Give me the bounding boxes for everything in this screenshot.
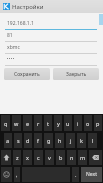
- staticText: z: [16, 154, 19, 161]
- staticText: h: [58, 137, 62, 144]
- button[interactable]: 192.168.1.1: [0, 18, 103, 30]
- staticText: Закрыть: [66, 71, 87, 78]
- button[interactable]: i: [74, 115, 82, 131]
- button[interactable]: g: [44, 133, 53, 148]
- staticText: 81: [7, 32, 13, 39]
- staticText: m: [80, 154, 86, 161]
- staticText: x: [26, 154, 29, 161]
- button[interactable]: o: [84, 115, 92, 131]
- button[interactable]: xbmc: [0, 42, 103, 54]
- button[interactable]: Закрыть: [53, 68, 99, 80]
- button[interactable]: u: [64, 115, 72, 131]
- staticText: s: [17, 137, 20, 144]
- button[interactable]: k: [77, 133, 86, 148]
- staticText: q: [4, 120, 8, 127]
- button[interactable]: r: [34, 115, 42, 131]
- button[interactable]: y: [54, 115, 62, 131]
- button[interactable]: f: [34, 133, 42, 148]
- button[interactable]: Next: [81, 167, 102, 182]
- staticText: .: [75, 171, 77, 178]
- button[interactable]: v: [45, 150, 54, 165]
- button[interactable]: d: [24, 133, 32, 148]
- button[interactable]: j: [66, 133, 75, 148]
- staticText: Next: [86, 171, 97, 178]
- staticText: f: [37, 137, 39, 144]
- button[interactable]: Shift: [1, 150, 11, 165]
- staticText: c: [37, 154, 40, 161]
- staticText: j: [70, 137, 72, 144]
- button[interactable]: b: [56, 150, 65, 165]
- button[interactable]: Сохранить: [4, 68, 50, 80]
- staticText: v: [48, 154, 51, 161]
- button[interactable]: s: [14, 133, 22, 148]
- staticText: i: [77, 120, 79, 127]
- button[interactable]: x: [23, 150, 32, 165]
- button[interactable]: z: [13, 150, 21, 165]
- staticText: e: [26, 120, 30, 127]
- staticText: l: [92, 137, 94, 144]
- button[interactable]: w: [12, 115, 21, 131]
- button[interactable]: .: [72, 167, 79, 182]
- button[interactable]: l: [88, 133, 97, 148]
- button[interactable]: e: [23, 115, 32, 131]
- button[interactable]: q: [1, 115, 10, 131]
- staticText: w: [14, 120, 19, 127]
- staticText: r: [37, 120, 40, 127]
- staticText: a: [6, 137, 10, 144]
- button[interactable]: a: [4, 133, 12, 148]
- staticText: Сохранить: [14, 71, 40, 78]
- button[interactable]: ,: [14, 167, 20, 182]
- button[interactable]: Emoji: [1, 167, 12, 182]
- button[interactable]: n: [67, 150, 76, 165]
- staticText: o: [86, 120, 90, 127]
- staticText: b: [59, 154, 63, 161]
- staticText: p: [96, 120, 100, 127]
- staticText: y: [57, 120, 60, 127]
- staticText: g: [47, 137, 51, 144]
- staticText: xbmc: [7, 44, 20, 51]
- staticText: d: [26, 137, 30, 144]
- button[interactable]: [0, 54, 103, 66]
- button[interactable]: 81: [0, 30, 103, 42]
- staticText: n: [70, 154, 74, 161]
- button[interactable]: m: [78, 150, 87, 165]
- button[interactable]: h: [55, 133, 64, 148]
- button[interactable]: Настройки: [0, 0, 103, 13]
- button[interactable]: Backspace: [89, 150, 102, 165]
- button[interactable]: p: [94, 115, 102, 131]
- staticText: 192.168.1.1: [7, 20, 34, 27]
- button[interactable]: c: [34, 150, 43, 165]
- staticText: ,: [16, 171, 18, 178]
- staticText: k: [80, 137, 83, 144]
- button[interactable]: t: [44, 115, 52, 131]
- staticText: u: [66, 120, 70, 127]
- staticText: t: [47, 120, 49, 127]
- staticText: Настройки: [12, 3, 44, 11]
